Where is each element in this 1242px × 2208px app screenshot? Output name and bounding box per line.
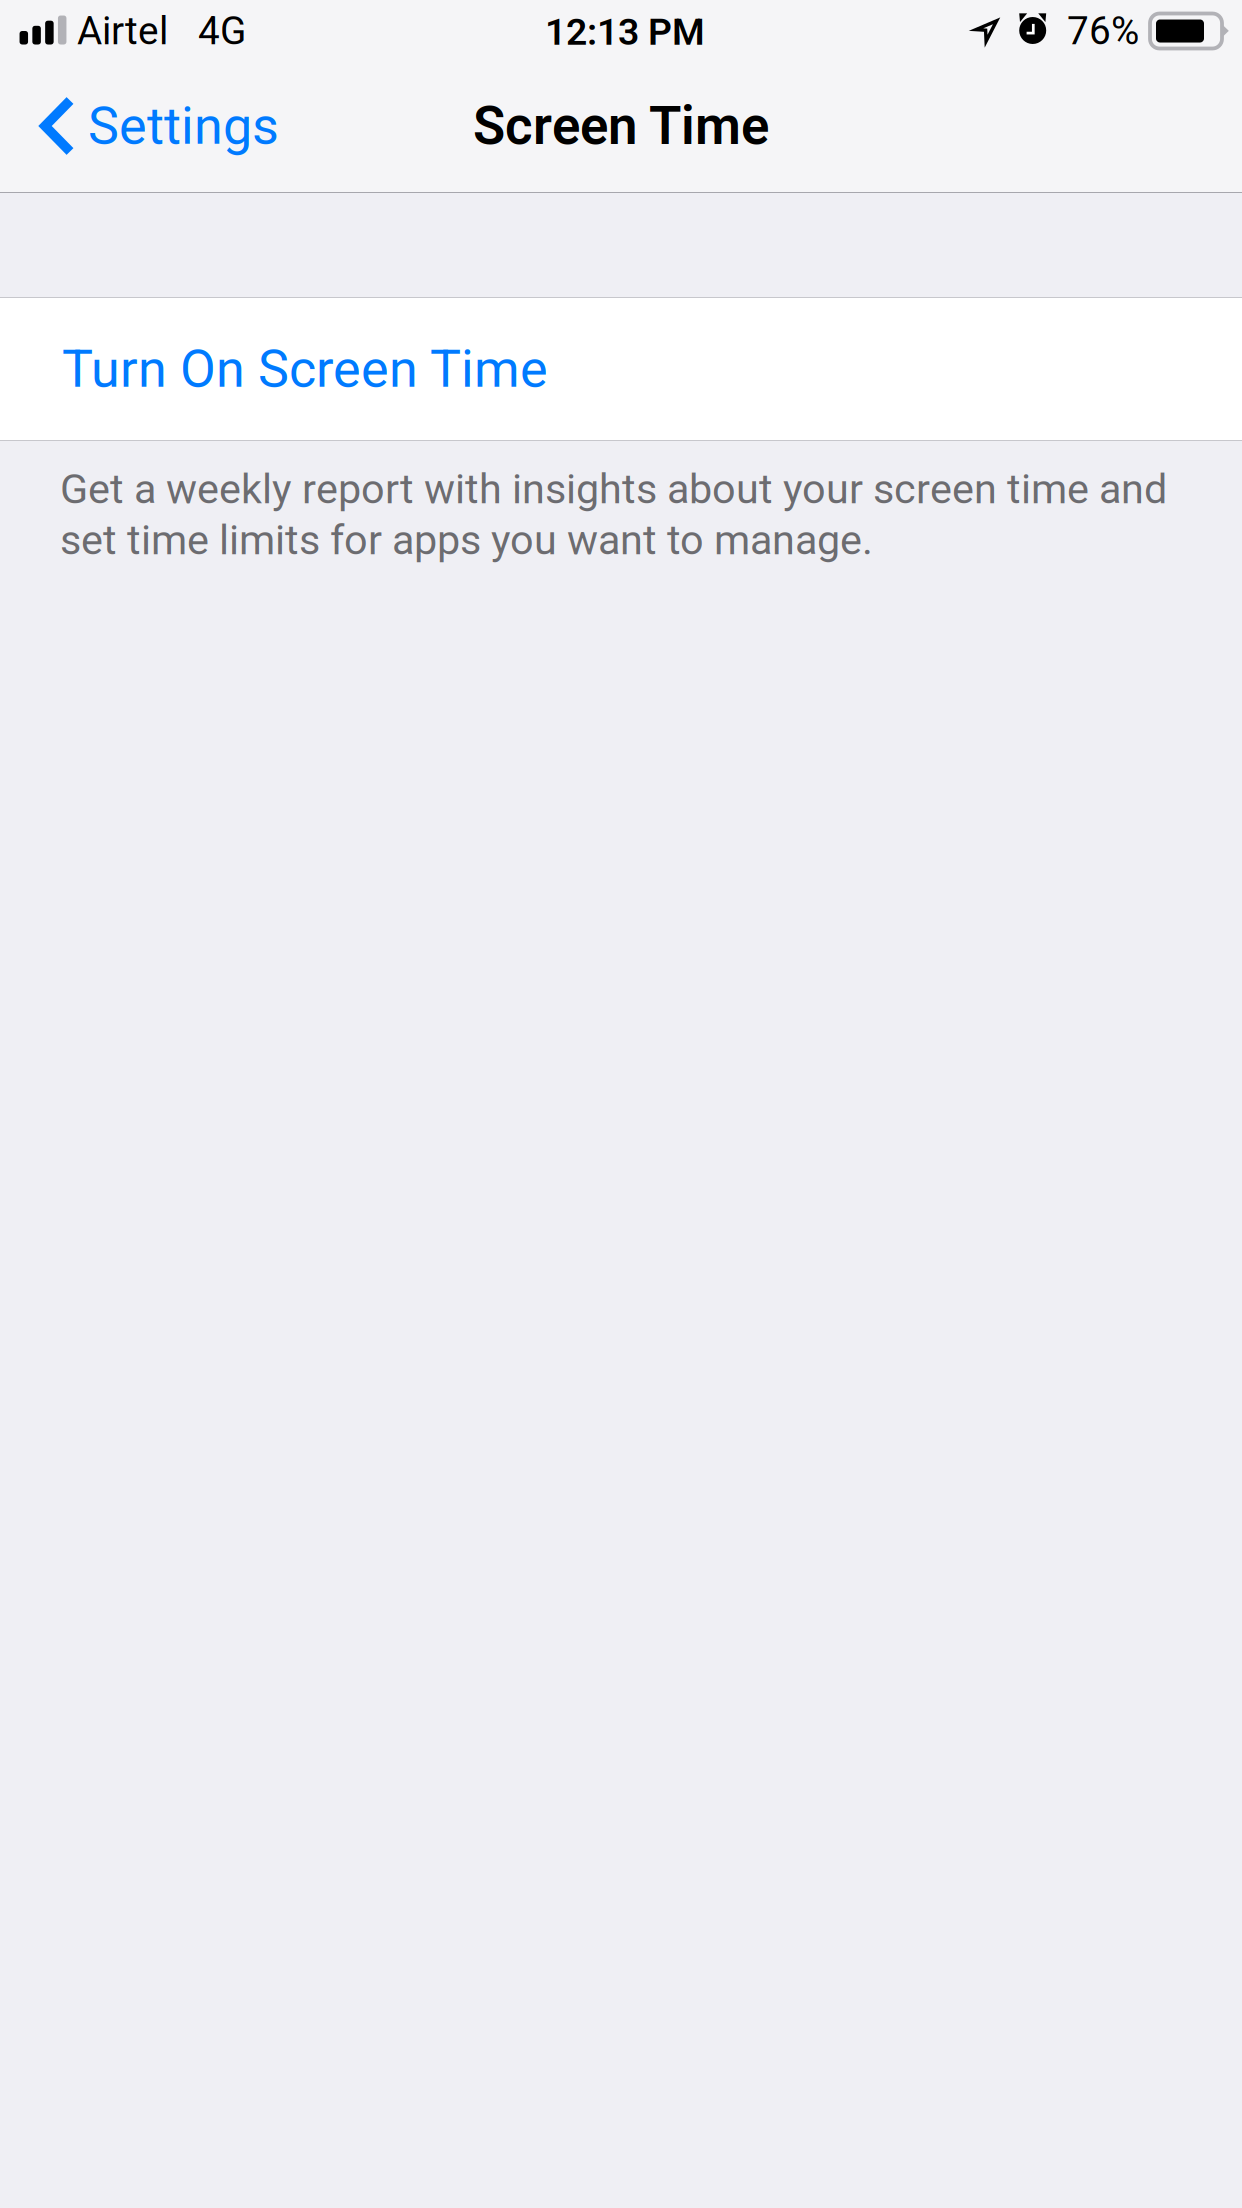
staticText: Get a weekly report with insights about … bbox=[60, 465, 1167, 564]
button[interactable]: Turn On Screen Time bbox=[0, 298, 1242, 440]
staticText: 12:13 PM bbox=[545, 10, 705, 54]
staticText: Airtel bbox=[77, 8, 168, 54]
button[interactable]: Settings bbox=[0, 60, 303, 192]
staticText: Turn On Screen Time bbox=[62, 338, 548, 399]
staticText: Screen Time bbox=[473, 95, 769, 157]
staticText: 4G bbox=[198, 8, 246, 54]
staticText: Settings bbox=[88, 95, 279, 156]
staticText: 76% bbox=[1067, 8, 1139, 54]
